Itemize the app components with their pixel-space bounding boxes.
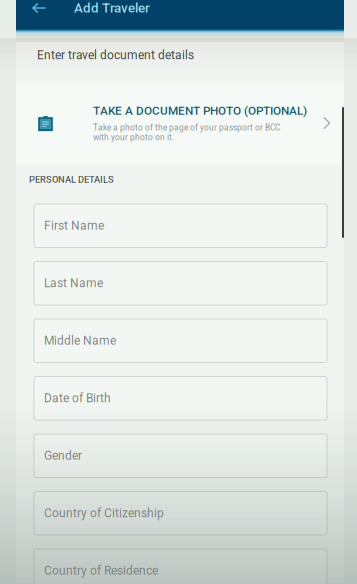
staticText: TAKE A DOCUMENT PHOTO (OPTIONAL) — [93, 104, 307, 118]
button[interactable]: Country of Residence — [34, 549, 327, 584]
staticText: First Name — [44, 219, 104, 233]
staticText: Add Traveler — [74, 0, 150, 16]
button[interactable]: Gender — [34, 434, 327, 477]
staticText: Country of Citizenship — [44, 506, 164, 520]
button[interactable]: Add Traveler — [74, 0, 150, 21]
button[interactable]: First Name — [34, 204, 327, 247]
staticText: Last Name — [44, 276, 103, 290]
staticText: Take a photo of the page of your passpor… — [93, 123, 280, 142]
button[interactable]: Date of Birth — [34, 376, 327, 420]
button[interactable]: Back — [26, 0, 52, 21]
button[interactable]: Country of Citizenship — [34, 491, 327, 535]
staticText: Middle Name — [44, 334, 116, 348]
button[interactable]: Middle Name — [34, 319, 327, 362]
staticText: Date of Birth — [44, 391, 111, 405]
staticText: Enter travel document details — [37, 48, 194, 62]
button[interactable]: TAKE A DOCUMENT PHOTO (OPTIONAL) — [16, 81, 344, 165]
staticText: Country of Residence — [44, 564, 158, 578]
staticText: PERSONAL DETAILS — [29, 174, 114, 185]
button[interactable]: Last Name — [34, 261, 327, 305]
staticText: Gender — [44, 449, 82, 463]
